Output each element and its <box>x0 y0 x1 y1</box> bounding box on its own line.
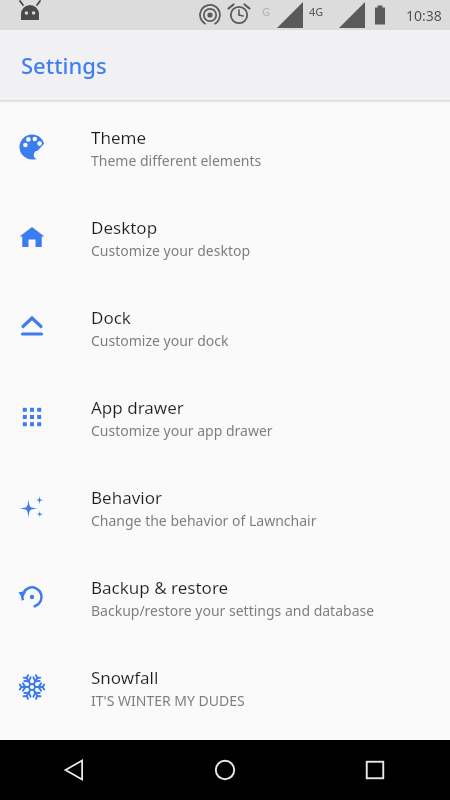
staticText: Backup/restore your settings and databas… <box>91 601 375 620</box>
staticText: Settings <box>21 50 107 80</box>
button[interactable]: Backup & restore <box>0 564 450 654</box>
staticText: Customize your dock <box>91 331 229 350</box>
button[interactable]: Theme <box>0 114 450 204</box>
button[interactable]: Desktop <box>0 204 450 294</box>
staticText: Theme different elements <box>91 151 262 170</box>
staticText: 10:38 <box>406 6 442 25</box>
staticText: Backup & restore <box>91 576 229 599</box>
button[interactable]: App drawer <box>0 384 450 474</box>
staticText: Behavior <box>91 486 163 509</box>
button[interactable]: Dock <box>0 294 450 384</box>
staticText: Snowfall <box>91 666 159 689</box>
button[interactable]: Recent apps <box>300 740 450 800</box>
staticText: 4G <box>309 4 324 19</box>
staticText: IT'S WINTER MY DUDES <box>91 691 245 710</box>
button[interactable]: Behavior <box>0 474 450 564</box>
staticText: Desktop <box>91 216 158 239</box>
staticText: Change the behavior of Lawnchair <box>91 511 317 530</box>
staticText: Customize your app drawer <box>91 421 273 440</box>
staticText: App drawer <box>91 396 184 419</box>
button[interactable]: Snowfall <box>0 654 450 740</box>
staticText: Theme <box>91 126 147 149</box>
staticText: Dock <box>91 306 131 329</box>
button[interactable]: Home <box>150 740 300 800</box>
staticText: G <box>262 4 270 19</box>
button[interactable]: Back <box>0 740 150 800</box>
staticText: Customize your desktop <box>91 241 251 260</box>
